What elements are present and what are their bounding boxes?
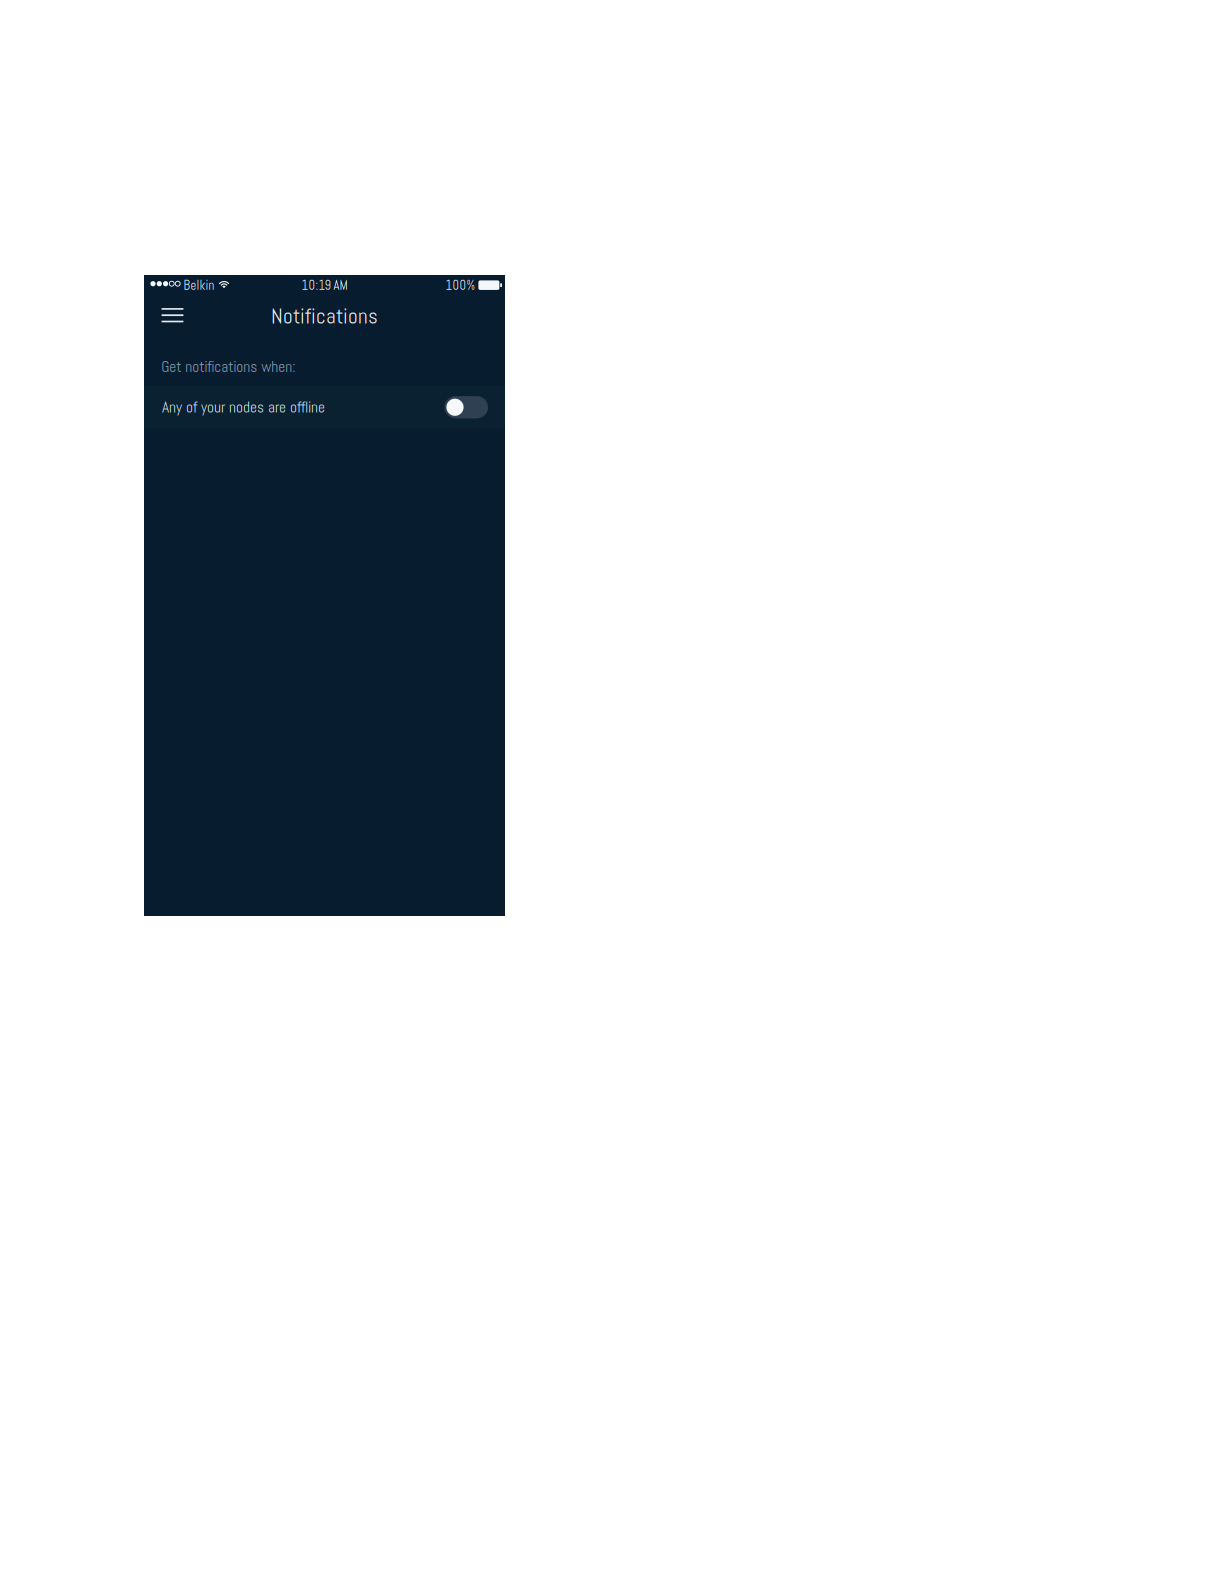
staticText: Notifications bbox=[271, 302, 378, 330]
button[interactable]: Any of your nodes are offline bbox=[144, 386, 505, 428]
staticText: 100% bbox=[446, 277, 476, 293]
staticText: 10:19 AM bbox=[301, 277, 347, 293]
staticText: Any of your nodes are offline bbox=[162, 397, 325, 417]
button[interactable]: Menu bbox=[153, 296, 191, 334]
staticText: Belkin bbox=[184, 277, 215, 293]
staticText: Get notifications when: bbox=[161, 357, 295, 376]
